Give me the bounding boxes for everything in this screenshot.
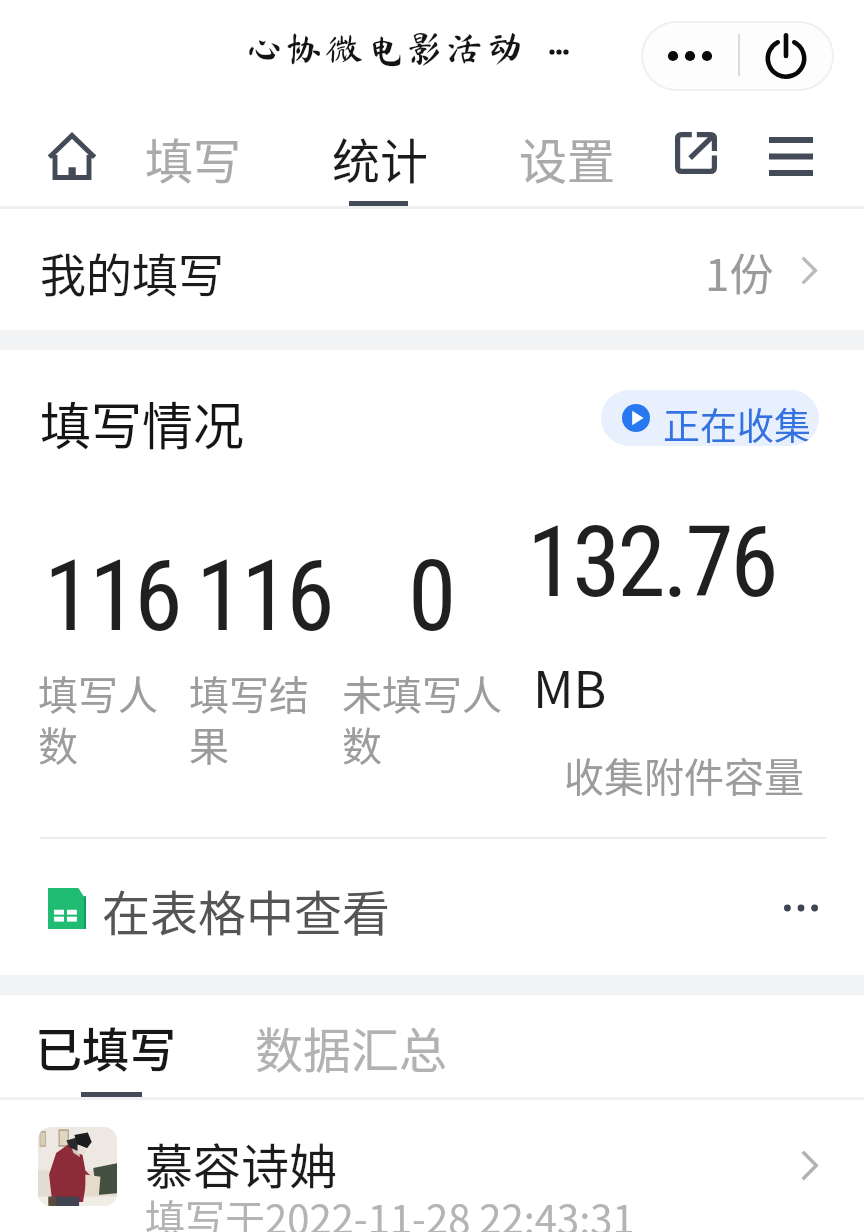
staticText: 116 — [44, 539, 180, 654]
button[interactable]: 数据汇总 — [235, 995, 471, 1097]
staticText: 填写人 — [38, 664, 158, 722]
staticText: 正在收集 — [663, 397, 811, 446]
staticText: 心协微电影活动 — [245, 29, 527, 66]
staticText: 132.76 — [527, 505, 776, 620]
staticText: 已填写 — [35, 1012, 176, 1080]
staticText: 数 — [38, 715, 78, 773]
button[interactable]: Menu — [748, 109, 834, 203]
button[interactable]: 我的填写 — [0, 209, 864, 330]
staticText: 116 — [196, 539, 332, 654]
button[interactable]: 设置 — [497, 112, 634, 206]
staticText: 填写结 — [189, 664, 309, 722]
staticText: 填写 — [145, 123, 242, 193]
staticText: 在表格中查看 — [102, 875, 391, 945]
staticText: 未填写人 — [342, 664, 502, 722]
button[interactable]: More options — [641, 21, 738, 90]
staticText: 收集附件容量 — [440, 746, 804, 804]
staticText: 果 — [189, 715, 229, 773]
button[interactable]: 已填写 — [18, 995, 208, 1097]
staticText: 1份 — [705, 240, 774, 304]
button[interactable]: 统计 — [310, 112, 444, 206]
button[interactable]: Home — [20, 109, 124, 203]
staticText: 数据汇总 — [255, 1012, 448, 1082]
button[interactable]: 慕容诗姌 — [0, 1100, 864, 1232]
staticText: 我的填写 — [40, 239, 224, 306]
button[interactable]: 填写 — [123, 112, 258, 206]
staticText: 0 — [408, 539, 454, 654]
button[interactable]: Close mini program — [738, 21, 834, 90]
staticText: 统计 — [332, 123, 429, 193]
button[interactable]: 正在收集 — [601, 390, 819, 446]
staticText: 填写情况 — [40, 386, 245, 460]
staticText: 填写于2022-11-28 22:43:31 — [145, 1188, 635, 1232]
staticText: MB — [533, 650, 607, 722]
button[interactable]: Share — [655, 106, 737, 200]
staticText: 设置 — [519, 123, 616, 193]
staticText: 数 — [342, 715, 382, 773]
staticText: 慕容诗姌 — [145, 1128, 338, 1198]
button[interactable]: 在表格中查看 — [0, 832, 864, 975]
